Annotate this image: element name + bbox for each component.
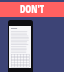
staticText: DON'T <box>19 2 44 17</box>
button[interactable]: DON'T <box>0 2 64 17</box>
button[interactable] <box>8 20 33 72</box>
